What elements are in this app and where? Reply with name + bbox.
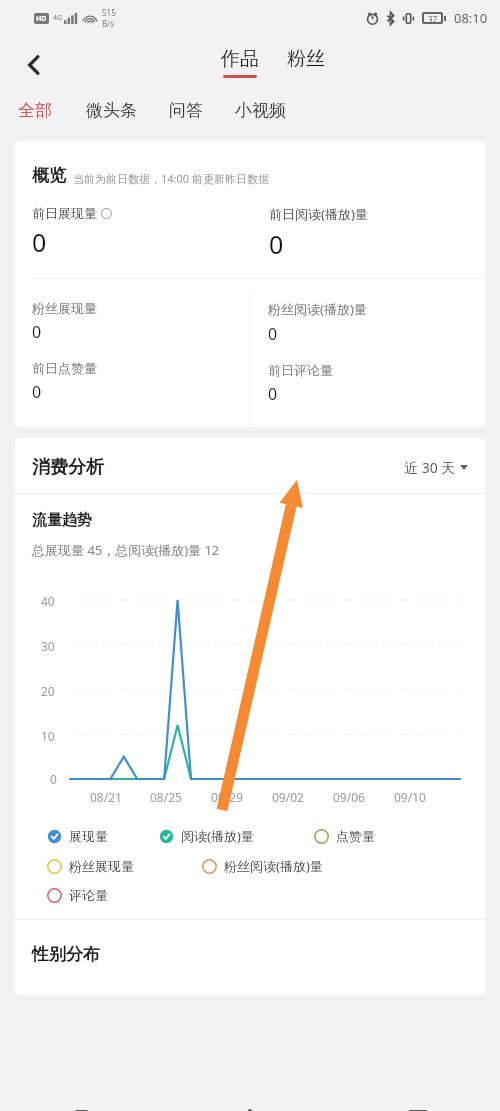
staticText: 阅读(播放)量 xyxy=(181,827,254,845)
staticText: 评论量 xyxy=(69,887,108,903)
staticText: 0 xyxy=(269,227,284,261)
button[interactable]: 近 30 天 xyxy=(404,458,468,477)
staticText: 0 xyxy=(32,225,47,259)
staticText: 点赞量 xyxy=(336,828,375,844)
staticText: 09/10 xyxy=(394,789,455,805)
button[interactable]: 粉丝阅读(播放)量 xyxy=(202,857,323,875)
button[interactable]: 微头条 xyxy=(86,98,137,123)
staticText: 10 xyxy=(41,728,55,744)
staticText: 展现量 xyxy=(69,828,108,844)
staticText: 概览 xyxy=(32,165,66,186)
staticText: 微头条 xyxy=(86,100,137,121)
staticText: 近 30 天 xyxy=(404,458,456,477)
button[interactable]: 小视频 xyxy=(235,98,286,123)
button[interactable]: 阅读(播放)量 xyxy=(159,827,314,845)
staticText: B/s xyxy=(102,18,115,29)
staticText: HD xyxy=(36,14,47,24)
button[interactable]: 展现量 xyxy=(47,828,159,844)
staticText: 粉丝展现量 xyxy=(69,858,134,874)
staticText: 消费分析 xyxy=(32,456,104,479)
staticText: 37 xyxy=(428,14,438,22)
staticText: 总展现量 45，总阅读(播放)量 12 xyxy=(32,541,220,559)
staticText: 作品 xyxy=(221,47,259,71)
staticText: 性别分布 xyxy=(32,944,100,965)
staticText: 08/21 xyxy=(90,789,150,805)
staticText: 515 xyxy=(102,7,116,18)
staticText: 粉丝展现量 xyxy=(32,300,97,316)
staticText: 问答 xyxy=(169,100,203,121)
staticText: 08:10 xyxy=(454,9,488,27)
staticText: 09/06 xyxy=(333,789,394,805)
staticText: 当前为前日数据，14:00 前更新昨日数据 xyxy=(73,171,269,186)
staticText: 流量趋势 xyxy=(32,511,92,530)
staticText: 4G xyxy=(53,13,63,23)
staticText: 前日点赞量 xyxy=(32,360,97,376)
staticText: 粉丝 xyxy=(287,47,325,71)
staticText: 小视频 xyxy=(235,100,286,121)
staticText: 前日阅读(播放)量 xyxy=(269,205,368,223)
button[interactable]: 全部 xyxy=(18,98,52,123)
staticText: 40 xyxy=(41,593,55,609)
button[interactable]: 问答 xyxy=(169,98,203,123)
button[interactable]: 粉丝展现量 xyxy=(47,858,202,874)
staticText: 08/25 xyxy=(150,789,211,805)
staticText: 前日评论量 xyxy=(268,362,333,378)
button[interactable]: 点赞量 xyxy=(314,828,375,844)
staticText: 粉丝阅读(播放)量 xyxy=(268,300,367,318)
staticText: 粉丝阅读(播放)量 xyxy=(224,857,323,875)
staticText: 20 xyxy=(41,683,55,699)
staticText: 全部 xyxy=(18,100,52,121)
staticText: 0 xyxy=(268,323,278,345)
staticText: 0 xyxy=(32,321,42,343)
staticText: 08/29 xyxy=(211,789,272,805)
staticText: 09/02 xyxy=(272,789,333,805)
button[interactable]: 作品 xyxy=(221,47,259,78)
staticText: 0 xyxy=(50,771,57,787)
staticText: 0 xyxy=(32,381,42,403)
staticText: 前日展现量 xyxy=(32,205,97,221)
button[interactable]: 粉丝 xyxy=(287,47,325,71)
staticText: 30 xyxy=(41,638,55,654)
staticText: 0 xyxy=(268,383,278,405)
button[interactable]: 评论量 xyxy=(47,887,108,903)
button[interactable]: Back xyxy=(10,41,58,89)
